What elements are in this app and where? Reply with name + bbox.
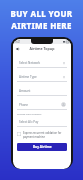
staticText: Airtime Type [19, 75, 63, 79]
staticText: Phone [19, 103, 62, 107]
button[interactable]: Express recurrent validation for [17, 131, 67, 139]
staticText: Select A/c Pay [19, 120, 65, 124]
button[interactable]: Back [13, 44, 22, 53]
staticText: Amount [19, 89, 65, 93]
staticText: payment machine [23, 135, 45, 139]
staticText: Buy Airtime [33, 145, 52, 149]
staticText: Airtime Topup [22, 46, 62, 51]
staticText: Select Network [19, 61, 63, 65]
staticText: Choose from contacts [17, 112, 42, 115]
staticText: AIRTIME HERE [0, 20, 83, 31]
staticText: Express recurrent validation for [23, 131, 62, 135]
button[interactable]: Airtime Type [17, 72, 67, 81]
staticText: 9:41 [15, 40, 21, 44]
button[interactable]: Select A/c Pay [17, 117, 67, 126]
staticText: BUY ALL YOUR [0, 8, 83, 19]
button[interactable]: Buy Airtime [17, 143, 67, 151]
button[interactable]: Phone [17, 100, 67, 109]
button[interactable]: Select Network [17, 58, 67, 67]
button[interactable]: Amount [17, 86, 67, 95]
